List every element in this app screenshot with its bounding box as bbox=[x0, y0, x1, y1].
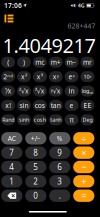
button[interactable]: m+ bbox=[49, 57, 63, 68]
staticText: +/− bbox=[31, 134, 41, 143]
staticText: log₁₀ bbox=[82, 87, 93, 95]
staticText: % bbox=[57, 134, 63, 143]
button[interactable]: 2ⁿᵈ bbox=[1, 71, 15, 82]
staticText: tanh bbox=[50, 116, 61, 123]
staticText: 1 bbox=[9, 176, 14, 187]
staticText: 0 bbox=[33, 190, 38, 201]
staticText: ³√x bbox=[35, 87, 45, 95]
button[interactable]: m− bbox=[65, 57, 79, 68]
button[interactable]: 2 bbox=[25, 175, 46, 187]
staticText: − bbox=[81, 161, 86, 173]
button[interactable]: log₁₀ bbox=[80, 85, 94, 96]
staticText: . bbox=[59, 190, 61, 201]
staticText: mc bbox=[35, 58, 44, 67]
staticText: sin bbox=[19, 101, 28, 110]
button[interactable]: sin bbox=[17, 100, 31, 111]
button[interactable]: cos bbox=[33, 100, 47, 111]
staticText: 2ⁿᵈ bbox=[3, 72, 13, 81]
staticText: Deg bbox=[82, 116, 92, 123]
staticText: Rand bbox=[2, 116, 14, 123]
button[interactable]: mr bbox=[80, 57, 94, 68]
staticText: 1.4049217 bbox=[2, 32, 95, 58]
button[interactable]: Delete bbox=[1, 189, 22, 202]
button[interactable]: = bbox=[73, 189, 94, 202]
button[interactable]: x² bbox=[17, 71, 31, 82]
button[interactable]: e bbox=[65, 100, 79, 111]
button[interactable]: tanh bbox=[49, 114, 63, 125]
button[interactable]: × bbox=[73, 146, 94, 159]
staticText: 4G bbox=[78, 2, 85, 9]
staticText: mr bbox=[83, 58, 92, 67]
staticText: x³ bbox=[37, 72, 43, 81]
button[interactable]: cosh bbox=[33, 114, 47, 125]
staticText: ( bbox=[7, 58, 9, 67]
staticText: 2 bbox=[33, 176, 38, 187]
button[interactable]: 1 bbox=[1, 175, 22, 187]
button[interactable]: − bbox=[73, 161, 94, 173]
staticText: + bbox=[81, 175, 86, 188]
staticText: 8 bbox=[33, 147, 38, 158]
staticText: × bbox=[81, 146, 86, 159]
button[interactable]: π bbox=[65, 114, 79, 125]
staticText: 6 bbox=[57, 162, 62, 172]
button[interactable]: ¹⁄x bbox=[1, 85, 15, 96]
button[interactable]: 9 bbox=[49, 146, 70, 159]
staticText: 7 bbox=[9, 147, 14, 158]
staticText: cos bbox=[35, 101, 45, 110]
button[interactable]: ln bbox=[65, 85, 79, 96]
staticText: x! bbox=[5, 101, 11, 110]
staticText: ln bbox=[69, 87, 75, 95]
button[interactable]: 5 bbox=[25, 161, 46, 173]
button[interactable]: ( bbox=[1, 57, 15, 68]
staticText: tan bbox=[51, 101, 61, 110]
staticText: ÷ bbox=[81, 132, 86, 144]
button[interactable]: ÷ bbox=[73, 132, 94, 144]
button[interactable]: Rand bbox=[1, 114, 15, 125]
button[interactable]: ³√x bbox=[33, 85, 47, 96]
staticText: 10ˣ bbox=[83, 73, 91, 80]
staticText: 628+447 bbox=[67, 21, 95, 30]
button[interactable]: sinh bbox=[17, 114, 31, 125]
staticText: ¹⁄x bbox=[5, 87, 12, 95]
staticText: 3 bbox=[57, 176, 62, 187]
button[interactable]: EE bbox=[80, 100, 94, 111]
staticText: π bbox=[70, 115, 74, 124]
staticText: AC bbox=[8, 134, 16, 143]
button[interactable]: . bbox=[49, 189, 70, 202]
staticText: eˣ bbox=[69, 72, 75, 81]
button[interactable]: 3 bbox=[49, 175, 70, 187]
button[interactable]: ²√x bbox=[17, 85, 31, 96]
button[interactable]: + bbox=[73, 175, 94, 187]
button[interactable]: % bbox=[49, 132, 70, 144]
staticText: sinh bbox=[19, 116, 29, 123]
button[interactable]: ) bbox=[17, 57, 31, 68]
staticText: ʸ√x bbox=[51, 87, 61, 95]
staticText: ) bbox=[23, 58, 25, 67]
staticText: = bbox=[81, 189, 86, 202]
staticText: EE bbox=[83, 101, 91, 110]
button[interactable]: 7 bbox=[1, 146, 22, 159]
staticText: cosh bbox=[34, 116, 46, 123]
button[interactable]: mc bbox=[33, 57, 47, 68]
button[interactable]: 8 bbox=[25, 146, 46, 159]
button[interactable]: tan bbox=[49, 100, 63, 111]
button[interactable]: 6 bbox=[49, 161, 70, 173]
button[interactable]: 10ˣ bbox=[80, 71, 94, 82]
staticText: e bbox=[70, 101, 74, 110]
staticText: 4 bbox=[9, 162, 14, 172]
staticText: xʸ bbox=[53, 72, 59, 81]
button[interactable]: AC bbox=[1, 132, 22, 144]
staticText: 5 bbox=[33, 162, 38, 172]
staticText: x² bbox=[21, 72, 27, 81]
button[interactable]: xʸ bbox=[49, 71, 63, 82]
button[interactable]: x! bbox=[1, 100, 15, 111]
button[interactable]: Calculator mode bbox=[1, 11, 16, 25]
staticText: m+ bbox=[51, 58, 61, 67]
button[interactable]: 0 bbox=[25, 189, 46, 202]
button[interactable]: 4 bbox=[1, 161, 22, 173]
button[interactable]: eˣ bbox=[65, 71, 79, 82]
button[interactable]: x³ bbox=[33, 71, 47, 82]
button[interactable]: Deg bbox=[80, 114, 94, 125]
button[interactable]: +/− bbox=[25, 132, 46, 144]
button[interactable]: ʸ√x bbox=[49, 85, 63, 96]
